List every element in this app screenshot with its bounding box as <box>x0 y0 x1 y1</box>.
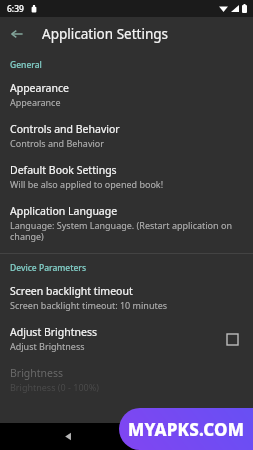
staticText: Application Settings <box>42 25 168 43</box>
staticText: Language: System Language. (Restart appl… <box>10 219 243 243</box>
staticText: Device Parameters <box>10 262 87 274</box>
staticText: Screen backlight timeout: 10 minutes <box>10 299 168 311</box>
staticText: MYAPKS.COM <box>128 418 245 441</box>
staticText: Adjust Brightness <box>10 325 97 339</box>
button[interactable]: Application Language <box>0 197 253 250</box>
staticText: Appearance <box>10 81 69 95</box>
staticText: Adjust Brightness <box>10 340 85 352</box>
staticText: Will be also applied to opened book! <box>10 178 164 190</box>
staticText: Application Language <box>10 204 118 218</box>
button[interactable]: Brightness <box>0 359 253 400</box>
button[interactable]: Controls and Behavior <box>0 115 253 156</box>
staticText: Screen backlight timeout <box>10 284 133 298</box>
staticText: Controls and Behavior <box>10 137 104 149</box>
staticText: Default Book Settings <box>10 163 117 177</box>
staticText: Brightness <box>10 366 64 380</box>
button[interactable]: Navigate up <box>0 17 33 50</box>
staticText: Controls and Behavior <box>10 122 120 136</box>
button[interactable]: Adjust Brightness <box>0 318 253 359</box>
button[interactable]: Appearance <box>0 74 253 115</box>
button[interactable]: Back <box>48 423 88 450</box>
button[interactable]: Adjust Brightness toggle <box>221 328 243 350</box>
button[interactable]: Default Book Settings <box>0 156 253 197</box>
button[interactable]: Screen backlight timeout <box>0 277 253 318</box>
staticText: General <box>10 59 42 71</box>
staticText: Appearance <box>10 96 61 108</box>
staticText: 6:39 <box>7 3 24 15</box>
staticText: Brightness (0 - 100%) <box>10 381 99 393</box>
